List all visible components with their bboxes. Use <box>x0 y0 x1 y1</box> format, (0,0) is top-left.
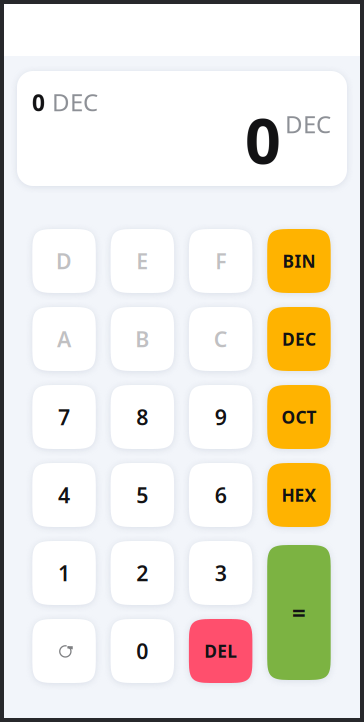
button[interactable]: B <box>111 307 174 371</box>
button[interactable]: DEL <box>189 619 252 683</box>
button[interactable]: 3 <box>189 541 252 605</box>
staticText: 6 <box>215 481 227 509</box>
button[interactable]: OCT <box>267 385 331 449</box>
staticText: DEC <box>52 86 98 118</box>
button[interactable]: F <box>189 229 252 293</box>
staticText: = <box>292 597 306 628</box>
staticText: 8 <box>136 403 148 431</box>
staticText: 0 <box>32 87 45 117</box>
staticText: 7 <box>58 403 70 431</box>
staticText: E <box>136 247 148 275</box>
staticText: C <box>214 325 228 353</box>
button[interactable]: E <box>111 229 174 293</box>
staticText: BIN <box>282 249 315 272</box>
button[interactable]: 6 <box>189 463 252 527</box>
button[interactable]: DEC <box>267 307 331 371</box>
button[interactable]: HEX <box>267 463 331 527</box>
button[interactable]: 9 <box>189 385 252 449</box>
button[interactable]: 1 <box>32 541 96 605</box>
staticText: A <box>57 325 71 353</box>
button[interactable]: 2 <box>111 541 174 605</box>
button[interactable]: 0 <box>111 619 174 683</box>
staticText: D <box>56 247 72 275</box>
staticText: F <box>215 247 226 275</box>
staticText: DEC <box>282 327 316 350</box>
staticText: 0 <box>136 637 148 665</box>
staticText: B <box>135 325 149 353</box>
staticText: DEL <box>204 639 237 662</box>
staticText: 2 <box>136 559 148 587</box>
button[interactable]: C <box>189 307 252 371</box>
staticText: HEX <box>281 483 316 506</box>
staticText: 3 <box>215 559 227 587</box>
staticText: 1 <box>58 559 70 587</box>
staticText: DEC <box>285 108 331 140</box>
staticText: 4 <box>58 481 70 509</box>
button[interactable]: 4 <box>32 463 96 527</box>
button[interactable]: = <box>267 545 331 680</box>
staticText: 9 <box>215 403 227 431</box>
button[interactable]: Clear <box>32 619 96 683</box>
staticText: 5 <box>136 481 148 509</box>
button[interactable]: D <box>32 229 96 293</box>
button[interactable]: 5 <box>111 463 174 527</box>
button[interactable]: BIN <box>267 229 331 293</box>
button[interactable]: 7 <box>32 385 96 449</box>
button[interactable]: 8 <box>111 385 174 449</box>
staticText: OCT <box>281 405 316 428</box>
staticText: 0 <box>245 98 281 181</box>
button[interactable]: A <box>32 307 96 371</box>
